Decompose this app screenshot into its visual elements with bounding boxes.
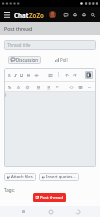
button[interactable]: Undo [64, 72, 70, 78]
button[interactable]: Back [71, 206, 84, 217]
button[interactable]: Strikethrough [25, 72, 31, 78]
button[interactable]: Notifications [79, 10, 88, 19]
staticText: Post thread [40, 195, 63, 201]
button[interactable]: Align [35, 84, 41, 90]
staticText: Chat [14, 11, 29, 19]
button[interactable]: Poll [55, 56, 68, 64]
button[interactable]: Discussion [11, 56, 38, 64]
button[interactable]: Post thread [36, 193, 63, 202]
button[interactable]: Profile [49, 11, 56, 18]
button[interactable]: Search [88, 10, 97, 19]
button[interactable]: Attach files [7, 173, 33, 181]
staticText: Post thread [4, 25, 33, 32]
button[interactable]: Table [77, 84, 83, 90]
button[interactable]: Home [44, 206, 57, 217]
button[interactable]: List [45, 84, 51, 90]
button[interactable]: Emoji [24, 84, 30, 90]
button[interactable]: Indent [54, 84, 60, 90]
button[interactable]: Italic [12, 72, 18, 78]
button[interactable]: Chat [14, 11, 44, 19]
button[interactable]: Insert quotes... [42, 173, 76, 181]
staticText: ZoZo [29, 11, 44, 19]
button[interactable]: Recents [17, 206, 30, 217]
button[interactable]: Conversations [61, 10, 70, 19]
staticText: Discussion [16, 57, 38, 63]
button[interactable]: Underline [18, 72, 24, 78]
button[interactable]: Link [33, 72, 39, 78]
button[interactable]: Alerts [70, 10, 79, 19]
button[interactable]: Text size [6, 84, 12, 90]
button[interactable]: More [86, 84, 92, 90]
button[interactable]: Code [68, 84, 74, 90]
staticText: Thread title [7, 42, 31, 48]
button[interactable]: Text color [15, 84, 21, 90]
button[interactable]: Image [47, 72, 53, 78]
button[interactable]: Source mode [85, 71, 93, 79]
staticText: Insert quotes... [46, 174, 76, 180]
staticText: Poll [60, 57, 68, 63]
staticText: Tags: [4, 187, 15, 193]
button[interactable]: Thread title [4, 40, 96, 50]
button[interactable]: Menu [0, 8, 14, 22]
button[interactable]: Redo [71, 72, 77, 78]
staticText: Attach files [11, 174, 33, 180]
button[interactable]: Bold [6, 72, 12, 78]
